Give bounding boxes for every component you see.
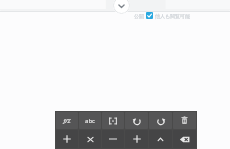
button[interactable]: Undo [125,112,148,129]
button[interactable]: Collapse [113,0,130,14]
button[interactable]: Checked [146,12,153,19]
button[interactable]: Minus [102,130,124,148]
button[interactable]: Brackets [102,112,124,129]
button[interactable]: Redo [149,112,172,129]
staticText: 他人も閲覧可能 [155,13,191,19]
button[interactable]: Add [125,130,148,148]
staticText: f/Σ [63,117,71,125]
button[interactable]: Plus [56,130,78,148]
button[interactable]: Backspace [173,130,196,148]
staticText: abc [85,117,95,125]
button[interactable]: Letters [79,112,101,129]
staticText: 公開 [134,13,144,19]
button[interactable]: Functions [56,112,78,129]
button[interactable]: Clear [173,112,196,129]
button[interactable]: Power [149,130,172,148]
button[interactable]: Multiply [79,130,101,148]
